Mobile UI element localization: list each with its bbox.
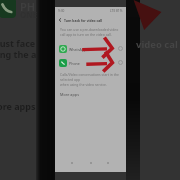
staticText: ONE [20,9,38,20]
staticText: ore apps [0,100,36,112]
staticText: Calls/Video conversations start in the s… [60,72,131,87]
button[interactable]: Phone [55,56,126,69]
staticText: WhatsApp [69,47,87,52]
staticText: just face [0,37,36,49]
staticText: Turn back for video call [64,18,103,22]
staticText: video cal [136,38,178,51]
staticText: More apps [60,92,79,97]
button[interactable]: Home [86,158,96,168]
button[interactable]: WhatsApp [55,42,126,55]
button[interactable]: Back [57,17,63,23]
staticText: ing the a [0,48,37,60]
staticText: Phone [69,61,80,66]
staticText: LTE 81% [110,9,123,13]
staticText: PH [20,0,36,14]
button[interactable]: Recent apps [67,158,77,168]
staticText: 9:30 [58,9,65,13]
button[interactable]: Back [103,158,113,168]
staticText: You can use a pre-downloaded video call … [60,27,119,37]
